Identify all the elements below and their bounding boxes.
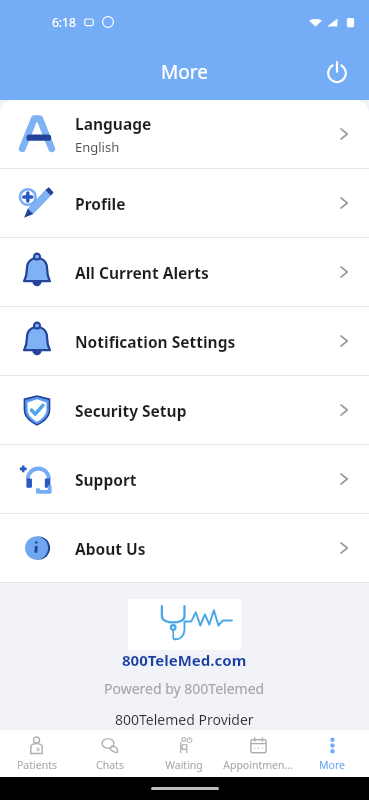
staticText: All Current Alerts [75, 262, 209, 283]
staticText: About Us [75, 538, 146, 559]
button[interactable]: Security Setup [0, 376, 369, 444]
button[interactable]: Support [0, 445, 369, 513]
staticText: Notification Settings [75, 331, 236, 352]
staticText: Powered by 800Telemed [104, 679, 265, 698]
button[interactable]: All Current Alerts [0, 238, 369, 306]
button[interactable]: Waiting [147, 730, 221, 777]
staticText: More [161, 59, 208, 85]
staticText: 800TeleMed.com [122, 650, 247, 670]
button[interactable]: Notification Settings [0, 307, 369, 375]
staticText: More [319, 758, 345, 772]
button[interactable]: Chats [73, 730, 147, 777]
button[interactable]: About Us [0, 514, 369, 582]
button[interactable]: More [295, 730, 369, 777]
staticText: Waiting [165, 758, 203, 772]
button[interactable]: Profile [0, 169, 369, 237]
button[interactable]: Log out [315, 50, 359, 94]
staticText: 6:18 [52, 14, 76, 30]
staticText: Appointmen… [223, 758, 293, 772]
staticText: Security Setup [75, 400, 187, 421]
button[interactable]: Patients [0, 730, 73, 777]
staticText: Support [75, 469, 137, 490]
staticText: 800Telemed Provider [115, 710, 254, 729]
button[interactable]: Language [0, 100, 369, 168]
button[interactable]: Appointmen… [221, 730, 295, 777]
staticText: Chats [96, 758, 124, 772]
staticText: Language [75, 113, 152, 134]
staticText: English [75, 138, 120, 156]
staticText: Patients [17, 758, 57, 772]
staticText: Profile [75, 193, 126, 214]
